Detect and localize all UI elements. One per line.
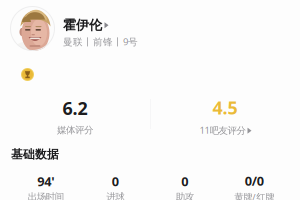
staticText: 0: [112, 172, 119, 190]
staticText: 11吧友评分: [199, 124, 245, 137]
staticText: 4.5: [212, 95, 237, 120]
staticText: 基础数据: [11, 147, 59, 162]
staticText: 6.2: [62, 96, 87, 120]
staticText: 94': [37, 172, 54, 190]
button[interactable]: 霍伊伦: [63, 17, 108, 33]
staticText: 0/0: [245, 172, 264, 189]
staticText: 出场时间: [28, 191, 64, 200]
button[interactable]: 6.2: [0, 98, 150, 134]
button[interactable]: 4.5: [150, 98, 300, 134]
button[interactable]: 球员头像: [10, 6, 55, 51]
staticText: 助攻: [176, 191, 194, 200]
staticText: 媒体评分: [57, 124, 93, 136]
staticText: 0: [181, 172, 188, 190]
staticText: 曼联丨前锋丨9号: [63, 35, 138, 48]
staticText: 黄牌/红牌: [234, 190, 274, 200]
staticText: 进球: [106, 191, 124, 200]
staticText: 霍伊伦: [63, 17, 102, 33]
